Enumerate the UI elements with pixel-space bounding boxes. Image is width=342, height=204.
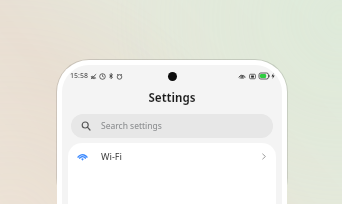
- button[interactable]: Search settings: [71, 114, 273, 138]
- staticText: Search settings: [101, 120, 162, 132]
- button[interactable]: Wi-Fi: [68, 143, 276, 169]
- other: Wi-Fi: [77, 151, 88, 162]
- staticText: Wi-Fi: [101, 150, 122, 162]
- staticText: 15:58: [70, 71, 88, 81]
- staticText: Settings: [148, 90, 196, 106]
